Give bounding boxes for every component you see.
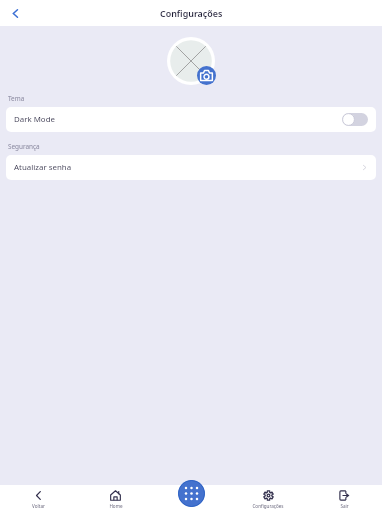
button[interactable]: Dark mode toggle	[342, 113, 368, 126]
staticText: Home	[109, 503, 123, 509]
button[interactable]: Configurações	[230, 485, 306, 509]
staticText: Tema	[8, 94, 25, 103]
button[interactable]: Sair	[306, 485, 382, 509]
button[interactable]: Voltar	[0, 485, 77, 509]
button[interactable]: Apps	[178, 480, 205, 507]
staticText: Atualizar senha	[14, 162, 72, 173]
button[interactable]: Home	[77, 485, 154, 509]
button[interactable]: Atualizar senha	[6, 155, 376, 180]
button[interactable]: Change photo	[197, 66, 216, 85]
staticText: Sair	[340, 503, 349, 509]
staticText: Dark Mode	[14, 114, 55, 125]
button[interactable]: Back	[0, 0, 26, 26]
staticText: Voltar	[32, 503, 45, 509]
button[interactable]: Dark Mode	[6, 107, 376, 132]
staticText: Configurações	[160, 7, 223, 19]
staticText: Segurança	[8, 142, 40, 151]
staticText: Configurações	[252, 503, 284, 509]
